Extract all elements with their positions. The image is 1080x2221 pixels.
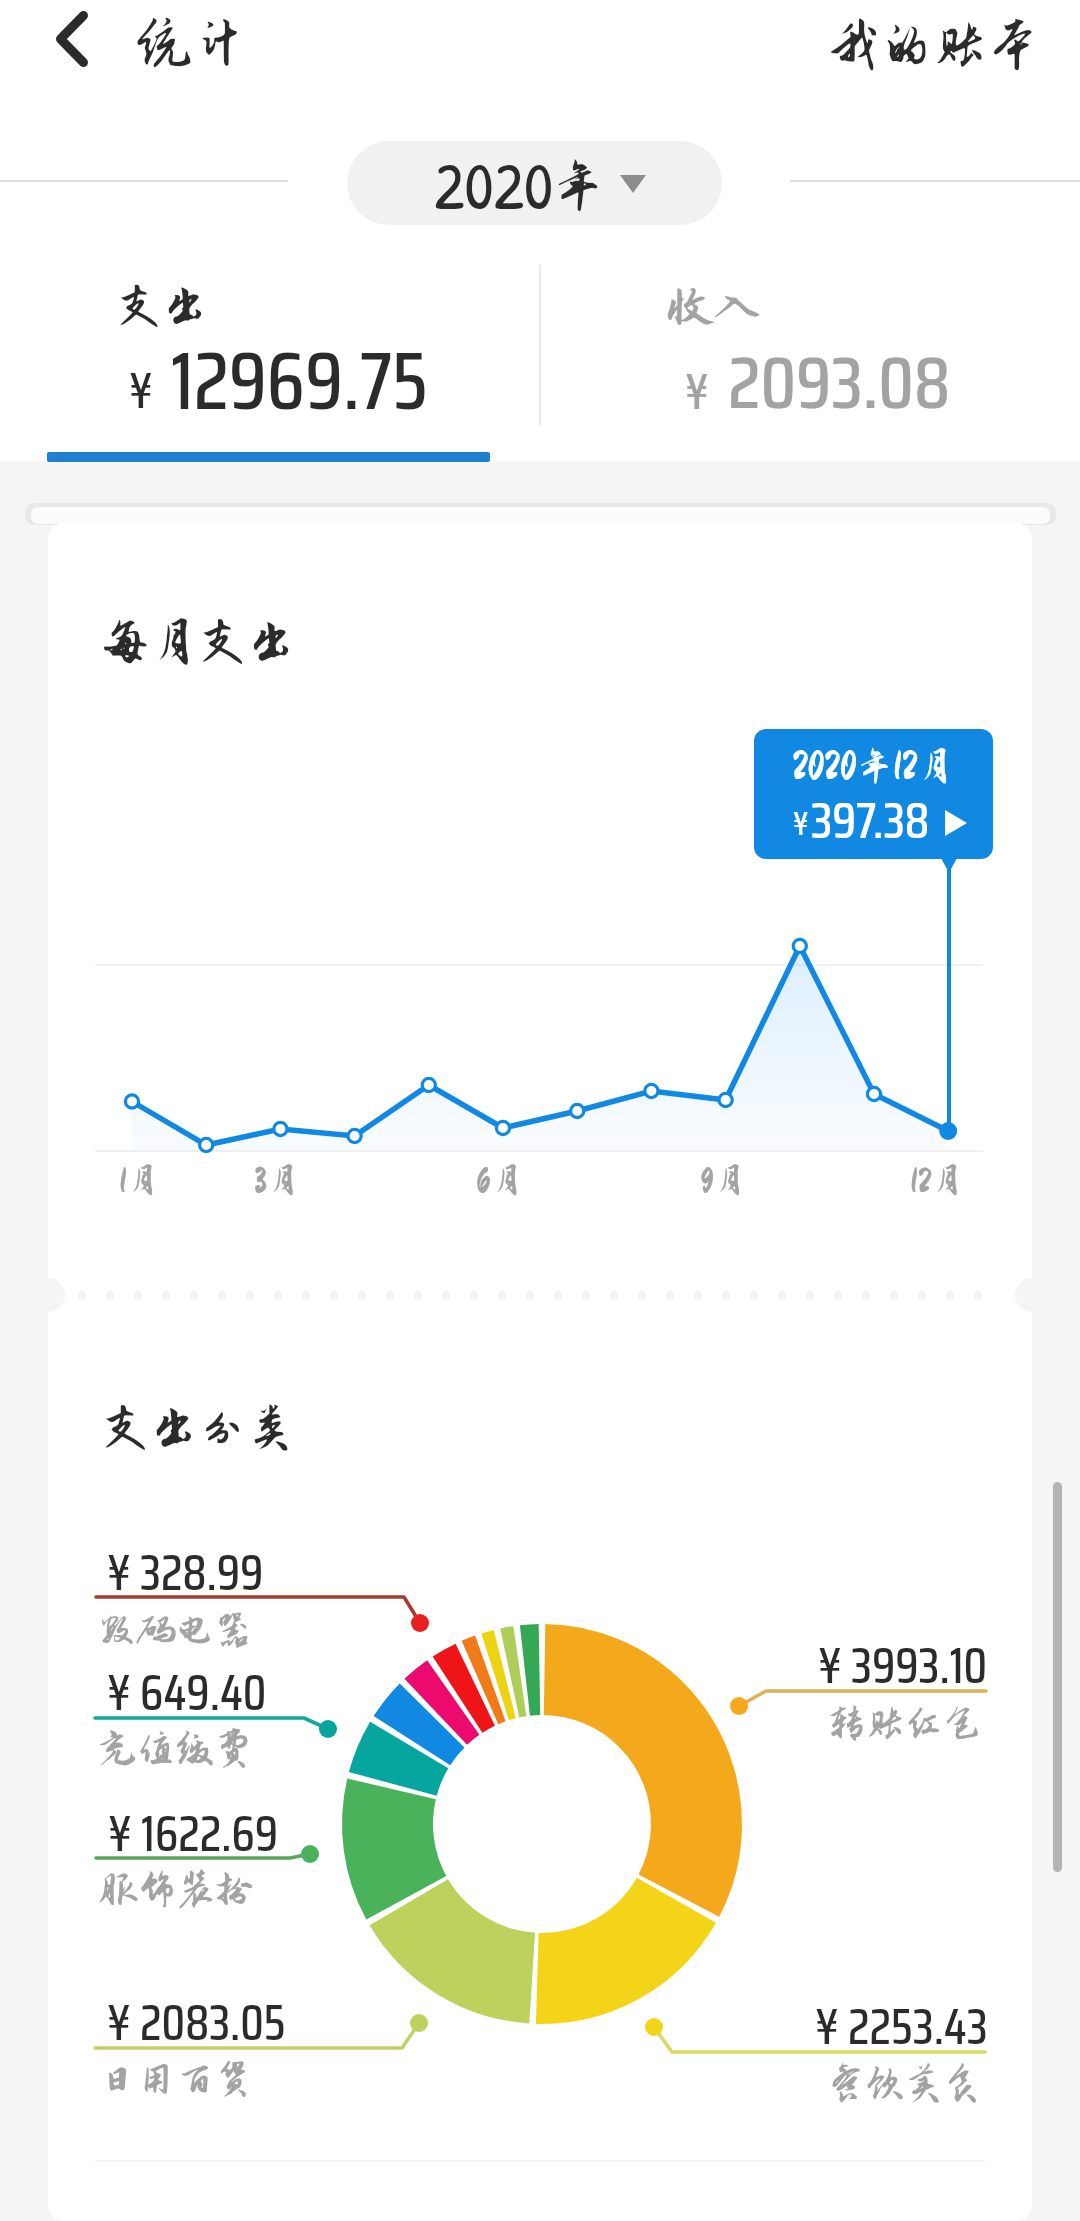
staticText: ¥ bbox=[685, 353, 709, 430]
staticText: 餐饮美食 bbox=[827, 2062, 982, 2105]
staticText: 2020 bbox=[434, 141, 554, 229]
button[interactable]: 统计 bbox=[126, 0, 266, 80]
staticText: 统计 bbox=[136, 12, 248, 74]
staticText: 1月 bbox=[119, 1162, 159, 1198]
staticText: ¥ 2253.43 bbox=[815, 1988, 988, 2065]
staticText: 3月 bbox=[254, 1162, 300, 1198]
button[interactable]: 2020年 选择年份 bbox=[347, 141, 722, 225]
staticText: 397.38 bbox=[811, 781, 930, 860]
staticText: ¥ 3993.10 bbox=[818, 1627, 988, 1704]
staticText: 支出 bbox=[116, 281, 208, 332]
button[interactable]: 2020年12月 397.38 查看明细 bbox=[754, 729, 993, 859]
staticText: 我的账本 bbox=[827, 16, 1040, 75]
button[interactable]: 支出 12969.75 bbox=[0, 250, 540, 462]
staticText: ¥ 2083.05 bbox=[107, 1984, 286, 2061]
staticText: ¥ bbox=[793, 799, 809, 849]
button[interactable]: 我的账本 bbox=[800, 0, 1050, 84]
staticText: 12969.75 bbox=[171, 318, 428, 444]
staticText: 每月支出 bbox=[101, 615, 296, 669]
staticText: 6月 bbox=[476, 1162, 524, 1198]
staticText: 9月 bbox=[700, 1162, 746, 1198]
staticText: 日用百货 bbox=[98, 2058, 253, 2101]
staticText: 年 bbox=[551, 156, 605, 216]
staticText: 转账红包 bbox=[827, 1702, 982, 1745]
staticText: 服饰装扮 bbox=[99, 1868, 254, 1911]
staticText: 支出分类 bbox=[101, 1401, 296, 1455]
staticText: 12月 bbox=[910, 1162, 964, 1198]
staticText: 充值缴费 bbox=[98, 1727, 253, 1770]
staticText: ¥ 1622.69 bbox=[108, 1795, 279, 1872]
staticText: 2093.08 bbox=[728, 324, 951, 440]
button[interactable]: Back bbox=[16, 0, 126, 80]
staticText: 2020年12月 bbox=[792, 746, 954, 787]
staticText: ¥ 328.99 bbox=[107, 1534, 264, 1611]
button[interactable]: 收入 2093.08 bbox=[540, 250, 1080, 462]
staticText: ¥ bbox=[129, 352, 153, 429]
staticText: 数码电器 bbox=[98, 1609, 253, 1652]
staticText: ¥ 649.40 bbox=[107, 1654, 267, 1731]
staticText: 收入 bbox=[668, 282, 760, 333]
